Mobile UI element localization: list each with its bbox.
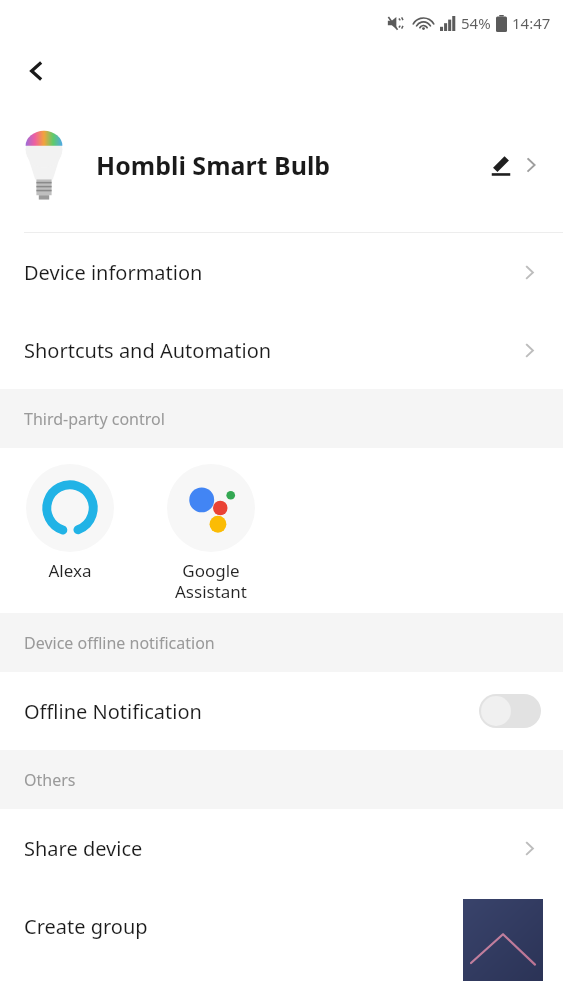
staticText: Alexa — [48, 559, 92, 582]
staticText: Hombli Smart Bulb — [96, 148, 483, 182]
button[interactable]: Hombli Smart Bulb — [0, 97, 563, 232]
button[interactable]: Share device — [0, 809, 563, 887]
staticText: Device information — [24, 259, 520, 286]
button[interactable]: Alexa — [26, 464, 114, 582]
button[interactable]: Offline notification toggle — [479, 694, 541, 728]
staticText: Shortcuts and Automation — [24, 337, 520, 364]
button[interactable]: Rename device — [483, 147, 519, 183]
staticText: Third-party control — [24, 408, 165, 430]
staticText: Others — [24, 769, 76, 791]
button[interactable]: Offline Notification — [0, 672, 563, 750]
staticText: Create group — [24, 913, 539, 940]
button[interactable]: Google Assistant — [167, 464, 255, 603]
button[interactable]: Shortcuts and Automation — [0, 311, 563, 389]
staticText: Google Assistant — [175, 559, 247, 603]
staticText: Share device — [24, 835, 520, 862]
button[interactable]: Device information — [0, 233, 563, 311]
staticText: Device offline notification — [24, 632, 215, 654]
staticText: 54% — [461, 13, 491, 33]
staticText: Offline Notification — [24, 698, 479, 725]
button[interactable]: Create group — [0, 887, 563, 965]
staticText: 14:47 — [512, 13, 551, 33]
button[interactable]: Back — [14, 49, 58, 93]
